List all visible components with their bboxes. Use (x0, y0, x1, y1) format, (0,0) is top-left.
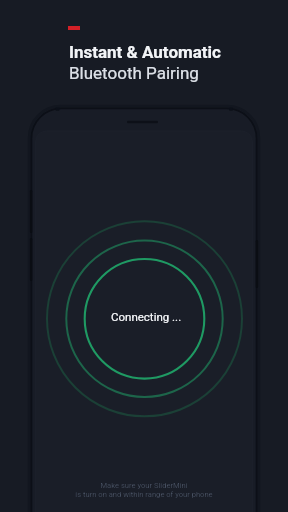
staticText: Bluetooth Pairing (69, 63, 199, 83)
staticText: Instant & Automatic (69, 42, 221, 62)
staticText: is turn on and within range of your phon… (75, 490, 213, 499)
button[interactable]: Connecting to SliderMini (87, 257, 206, 376)
staticText: Connecting ... (111, 310, 182, 323)
staticText: Make sure your SliderMini (100, 481, 188, 490)
